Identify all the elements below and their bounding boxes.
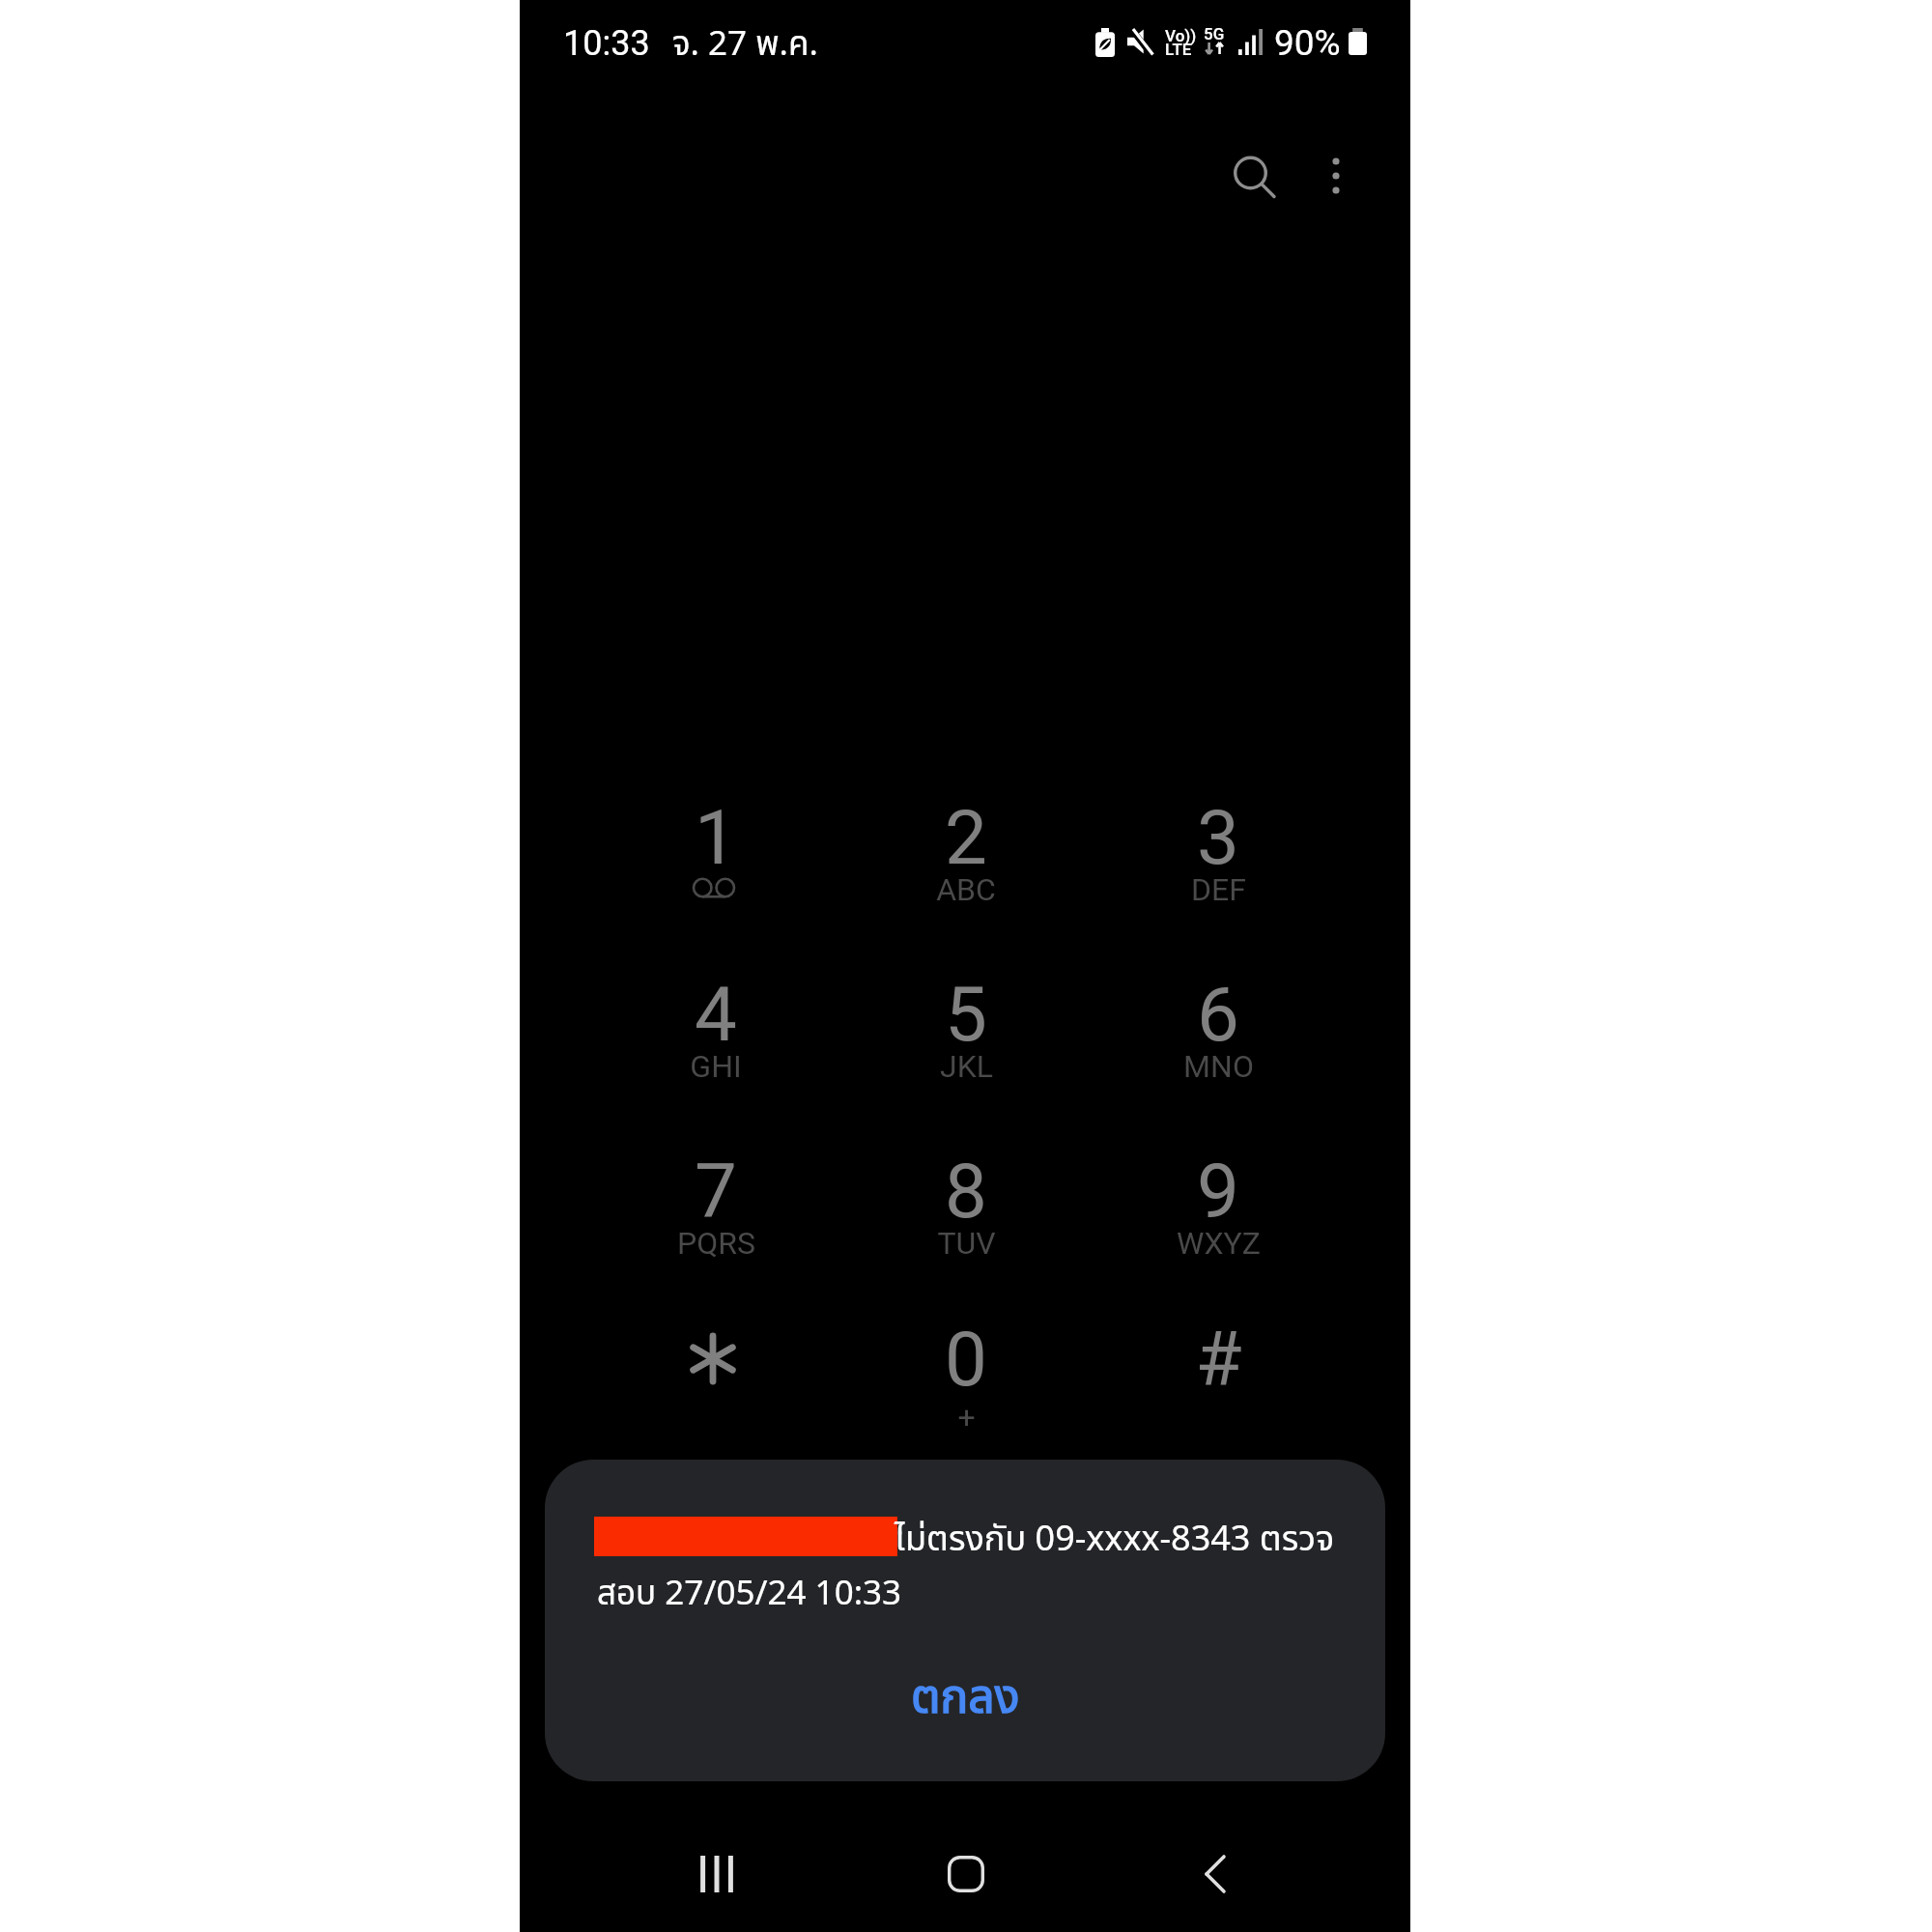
- staticText: WXYZ: [1177, 1225, 1261, 1262]
- button[interactable]: More options: [1288, 128, 1384, 224]
- button[interactable]: Dial 1: [610, 769, 822, 943]
- staticText: 90%: [1274, 22, 1341, 64]
- staticText: Vo)): [1165, 26, 1197, 45]
- staticText: สอบ 27/05/24 10:33: [597, 1569, 902, 1620]
- button[interactable]: Dial 8: [860, 1122, 1072, 1296]
- staticText: 2: [945, 794, 987, 882]
- staticText: MNO: [1183, 1048, 1254, 1085]
- staticText: 9: [1197, 1148, 1239, 1236]
- staticText: 6: [1197, 971, 1239, 1059]
- staticText: ABC: [936, 871, 996, 908]
- button[interactable]: Dial 2: [860, 769, 1072, 943]
- staticText: DEF: [1191, 871, 1246, 908]
- staticText: 3: [1197, 794, 1239, 882]
- button[interactable]: Dial 3: [1112, 769, 1324, 943]
- staticText: JKL: [940, 1048, 993, 1085]
- staticText: 5G: [1204, 24, 1225, 43]
- staticText: +: [957, 1399, 976, 1435]
- button[interactable]: Search: [1207, 127, 1304, 223]
- staticText: 5: [945, 971, 987, 1059]
- button[interactable]: Dial *: [610, 1291, 822, 1464]
- button[interactable]: Dial 0: [860, 1291, 1072, 1464]
- staticText: PQRS: [677, 1225, 755, 1262]
- button[interactable]: Dial #: [1112, 1291, 1324, 1464]
- staticText: 0: [945, 1316, 987, 1404]
- button[interactable]: Back: [1162, 1831, 1268, 1918]
- staticText: 1: [695, 794, 737, 882]
- staticText: 8: [945, 1148, 987, 1236]
- staticText: #: [1195, 1316, 1242, 1404]
- button[interactable]: Dial 9: [1112, 1122, 1324, 1296]
- staticText: 10:33: [563, 23, 650, 64]
- staticText: ไม่ตรงกับ 09-xxxx-8343 ตรวจ: [895, 1514, 1335, 1566]
- button[interactable]: Recents: [664, 1831, 770, 1918]
- staticText: LTE: [1165, 40, 1192, 59]
- staticText: 7: [695, 1148, 737, 1236]
- staticText: TUV: [937, 1225, 996, 1262]
- button[interactable]: Dial 7: [610, 1122, 822, 1296]
- button[interactable]: ตกลง: [545, 1655, 1385, 1742]
- button[interactable]: Dial 4: [610, 946, 822, 1120]
- staticText: จ. 27 พ.ค.: [672, 19, 818, 71]
- staticText: GHI: [690, 1048, 742, 1085]
- button[interactable]: Dial 6: [1112, 946, 1324, 1120]
- staticText: 4: [695, 971, 737, 1059]
- staticText: ตกลง: [911, 1663, 1020, 1734]
- button[interactable]: Dial 5: [860, 946, 1072, 1120]
- button[interactable]: Home: [913, 1831, 1019, 1918]
